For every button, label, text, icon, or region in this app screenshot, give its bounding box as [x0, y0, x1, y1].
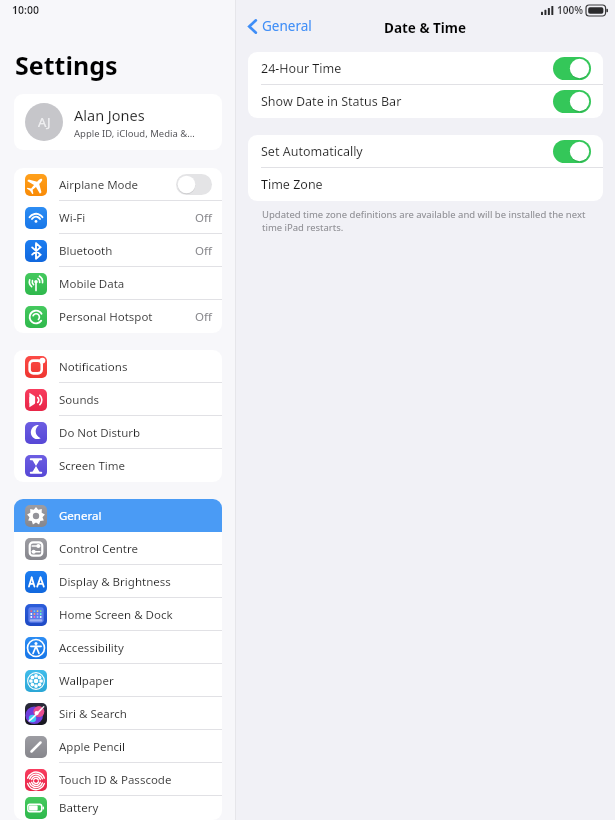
staticText: Airplane Mode: [59, 177, 176, 193]
button[interactable]: Battery: [14, 796, 222, 820]
staticText: Set Automatically: [261, 143, 553, 160]
staticText: Personal Hotspot: [59, 309, 195, 325]
button[interactable]: Screen Time: [14, 449, 222, 482]
button[interactable]: Airplane Mode: [14, 168, 222, 201]
staticText: Display & Brightness: [59, 574, 212, 590]
staticText: Apple ID, iCloud, Media &…: [74, 127, 195, 140]
button[interactable]: Display & Brightness: [14, 565, 222, 598]
button[interactable]: Time Zone: [248, 168, 603, 201]
staticText: Bluetooth: [59, 243, 195, 259]
button[interactable]: Control Centre: [14, 532, 222, 565]
staticText: Off: [195, 243, 212, 259]
staticText: Screen Time: [59, 458, 212, 474]
staticText: Sounds: [59, 392, 212, 408]
staticText: Apple Pencil: [59, 739, 212, 755]
staticText: 100%: [557, 3, 583, 17]
button[interactable]: Back to General: [243, 13, 317, 39]
staticText: 10:00: [12, 3, 39, 17]
button[interactable]: Apple Pencil: [14, 730, 222, 763]
button[interactable]: Bluetooth: [14, 234, 222, 267]
staticText: Home Screen & Dock: [59, 607, 212, 623]
button[interactable]: Mobile Data: [14, 267, 222, 300]
button[interactable]: Switch on: [553, 140, 591, 163]
button[interactable]: Home Screen & Dock: [14, 598, 222, 631]
button[interactable]: Switch off: [176, 174, 212, 195]
staticText: Accessibility: [59, 640, 212, 656]
staticText: Time Zone: [261, 176, 591, 193]
button[interactable]: Touch ID & Passcode: [14, 763, 222, 796]
staticText: Do Not Disturb: [59, 425, 212, 441]
staticText: Date & Time: [384, 19, 467, 37]
staticText: 24-Hour Time: [261, 60, 553, 77]
staticText: Control Centre: [59, 541, 212, 557]
button[interactable]: Wi-Fi: [14, 201, 222, 234]
staticText: Wi-Fi: [59, 210, 195, 226]
staticText: Wallpaper: [59, 673, 212, 689]
button[interactable]: AJ: [14, 94, 222, 150]
staticText: General: [262, 17, 312, 35]
staticText: Siri & Search: [59, 706, 212, 722]
staticText: Show Date in Status Bar: [261, 93, 553, 110]
button[interactable]: General: [14, 499, 222, 532]
button[interactable]: Notifications: [14, 350, 222, 383]
button[interactable]: Accessibility: [14, 631, 222, 664]
staticText: Battery: [59, 800, 212, 816]
button[interactable]: Do Not Disturb: [14, 416, 222, 449]
staticText: Updated time zone definitions are availa…: [262, 208, 589, 234]
staticText: Mobile Data: [59, 276, 212, 292]
staticText: Notifications: [59, 359, 212, 375]
button[interactable]: Wallpaper: [14, 664, 222, 697]
button[interactable]: 24-Hour Time: [248, 52, 603, 85]
staticText: AJ: [38, 113, 51, 131]
staticText: Off: [195, 309, 212, 325]
staticText: Off: [195, 210, 212, 226]
staticText: General: [59, 508, 212, 524]
button[interactable]: Sounds: [14, 383, 222, 416]
button[interactable]: Siri & Search: [14, 697, 222, 730]
button[interactable]: Show Date in Status Bar: [248, 85, 603, 118]
button[interactable]: Personal Hotspot: [14, 300, 222, 333]
button[interactable]: Switch on: [553, 57, 591, 80]
staticText: Settings: [15, 48, 118, 82]
staticText: Alan Jones: [74, 105, 145, 125]
staticText: Touch ID & Passcode: [59, 772, 212, 788]
button[interactable]: Set Automatically: [248, 135, 603, 168]
button[interactable]: Switch on: [553, 90, 591, 113]
